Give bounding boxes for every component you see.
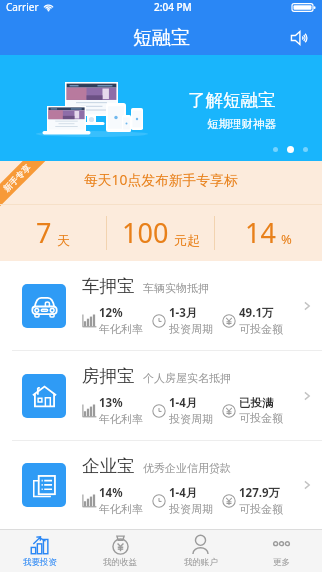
button[interactable]: 更多 (241, 530, 322, 572)
staticText: Carrier (6, 0, 39, 14)
staticText: 投资周期 (169, 322, 213, 336)
staticText: 127.9万 (239, 485, 281, 501)
staticText: 年化利率 (99, 322, 143, 336)
staticText: 1-4月 (169, 485, 198, 501)
staticText: % (281, 230, 292, 248)
staticText: 14% (99, 485, 123, 501)
button[interactable]: 我的收益 (80, 530, 160, 572)
button[interactable]: 房押宝 (0, 351, 322, 440)
button[interactable]: 车押宝 (0, 261, 322, 350)
staticText: 个人房屋实名抵押 (143, 371, 231, 385)
staticText: 新手专享 (1, 162, 33, 194)
staticText: 可投金额 (239, 322, 283, 336)
staticText: 优秀企业信用贷款 (143, 461, 231, 475)
staticText: 7 (36, 214, 52, 251)
staticText: 车押宝 (82, 275, 135, 297)
staticText: 13% (99, 395, 123, 411)
staticText: 12% (99, 305, 123, 321)
staticText: 已投满 (239, 396, 274, 410)
staticText: 年化利率 (99, 412, 143, 426)
button[interactable]: 我的账户 (160, 530, 241, 572)
staticText: 投资周期 (169, 502, 213, 516)
staticText: 49.1万 (239, 305, 274, 321)
staticText: 我的账户 (184, 557, 218, 568)
button[interactable]: 我要投资 (0, 530, 80, 572)
staticText: 短融宝 (133, 26, 190, 50)
staticText: 了解短融宝 (188, 89, 276, 111)
button[interactable]: Announcements (286, 25, 312, 51)
staticText: 可投金额 (239, 502, 283, 516)
staticText: 更多 (273, 557, 290, 568)
staticText: 我的收益 (103, 557, 137, 568)
staticText: 14 (245, 214, 276, 251)
staticText: 1-4月 (169, 395, 198, 411)
staticText: 可投金额 (239, 411, 283, 425)
staticText: 年化利率 (99, 502, 143, 516)
staticText: 元起 (174, 232, 200, 248)
staticText: 1-3月 (169, 305, 198, 321)
staticText: 2:04 PM (154, 0, 192, 14)
staticText: 100 (122, 214, 169, 251)
button[interactable]: 企业宝 (0, 441, 322, 529)
staticText: 天 (57, 232, 70, 248)
staticText: 我要投资 (23, 557, 57, 568)
staticText: 投资周期 (169, 412, 213, 426)
staticText: 房押宝 (82, 365, 135, 387)
staticText: 每天10点发布新手专享标 (84, 170, 238, 189)
button[interactable]: 了解短融宝 (0, 55, 322, 161)
staticText: 企业宝 (82, 455, 135, 477)
staticText: 车辆实物抵押 (143, 281, 209, 295)
staticText: 短期理财神器 (207, 117, 276, 131)
